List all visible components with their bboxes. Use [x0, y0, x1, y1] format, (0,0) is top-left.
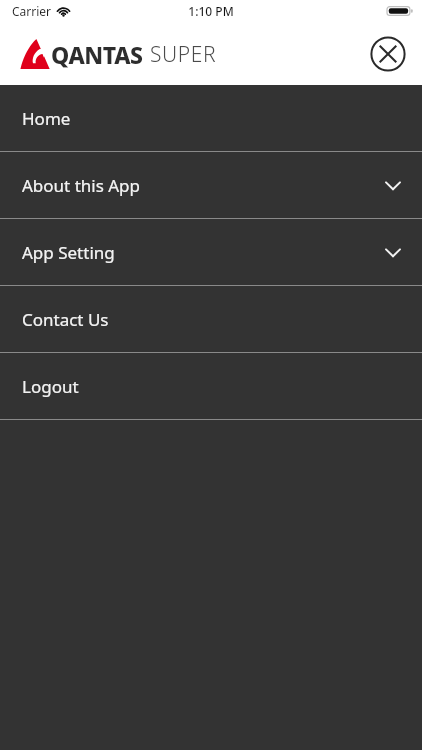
- button[interactable]: About this App: [0, 152, 422, 218]
- staticText: Logout: [22, 375, 79, 398]
- button[interactable]: Logout: [0, 353, 422, 419]
- staticText: About this App: [22, 174, 141, 197]
- staticText: Home: [22, 107, 71, 130]
- staticText: Carrier: [12, 3, 52, 19]
- button[interactable]: App Setting: [0, 219, 422, 285]
- button[interactable]: Home: [0, 85, 422, 151]
- button[interactable]: Contact Us: [0, 286, 422, 352]
- staticText: QANTAS: [51, 39, 143, 70]
- staticText: 1:10 PM: [188, 3, 234, 19]
- staticText: App Setting: [22, 241, 115, 264]
- staticText: Contact Us: [22, 308, 109, 331]
- button[interactable]: Close: [370, 36, 406, 72]
- staticText: SUPER: [150, 40, 217, 69]
